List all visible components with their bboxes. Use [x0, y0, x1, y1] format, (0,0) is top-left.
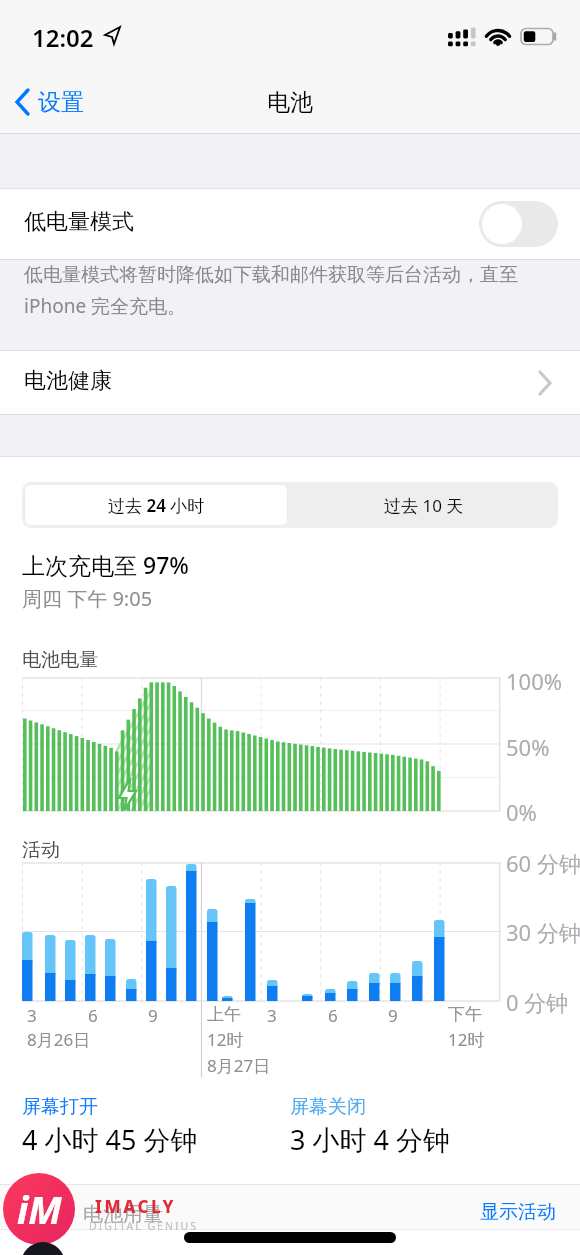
- staticText: 100%: [506, 666, 563, 696]
- button[interactable]: 过去 24 小时: [24, 484, 288, 526]
- staticText: IMACLY: [95, 1195, 177, 1218]
- staticText: 上次充电至 97%: [22, 549, 189, 580]
- staticText: 0%: [506, 797, 537, 827]
- staticText: 低电量模式将暂时降低如下载和邮件获取等后台活动，直至 iPhone 完全充电。: [24, 263, 518, 318]
- staticText: 电池电量: [22, 648, 98, 672]
- staticText: 屏幕打开: [22, 1095, 98, 1119]
- staticText: 过去 24 小时: [108, 494, 205, 517]
- staticText: 上午: [207, 1004, 241, 1025]
- staticText: 电池用量: [83, 1202, 163, 1227]
- staticText: 过去 10 天: [384, 494, 464, 517]
- button[interactable]: 设置: [38, 88, 84, 117]
- staticText: 活动: [22, 838, 60, 862]
- staticText: 低电量模式: [24, 208, 134, 236]
- button[interactable]: 显示活动: [480, 1200, 556, 1224]
- staticText: 9: [388, 1004, 398, 1027]
- staticText: 电池健康: [24, 367, 112, 395]
- staticText: 12时: [448, 1028, 485, 1051]
- staticText: iM: [17, 1183, 62, 1235]
- staticText: 下午: [448, 1004, 482, 1025]
- staticText: 0 分钟: [506, 987, 569, 1017]
- staticText: 屏幕关闭: [290, 1095, 366, 1119]
- button[interactable]: [14, 88, 32, 116]
- staticText: 3 小时 4 分钟: [290, 1121, 450, 1158]
- staticText: 12:02: [32, 21, 94, 54]
- staticText: 3: [27, 1004, 37, 1027]
- staticText: 12时: [207, 1028, 244, 1051]
- button[interactable]: 过去 10 天: [290, 482, 558, 528]
- staticText: 6: [328, 1004, 338, 1027]
- staticText: 9: [148, 1004, 158, 1027]
- staticText: 3: [267, 1004, 277, 1027]
- staticText: 60 分钟: [506, 848, 580, 878]
- staticText: 8月26日: [27, 1028, 91, 1051]
- staticText: 电池: [267, 88, 313, 117]
- staticText: 6: [88, 1004, 98, 1027]
- staticText: 周四 下午 9:05: [22, 585, 153, 612]
- staticText: DIGITAL GENIUS: [89, 1219, 198, 1233]
- staticText: 4 小时 45 分钟: [22, 1121, 198, 1158]
- staticText: 30 分钟: [506, 917, 580, 947]
- button[interactable]: 低电量模式: [0, 189, 580, 259]
- staticText: 8月27日: [207, 1054, 271, 1077]
- staticText: 50%: [506, 732, 550, 762]
- button[interactable]: 电池健康: [0, 351, 580, 414]
